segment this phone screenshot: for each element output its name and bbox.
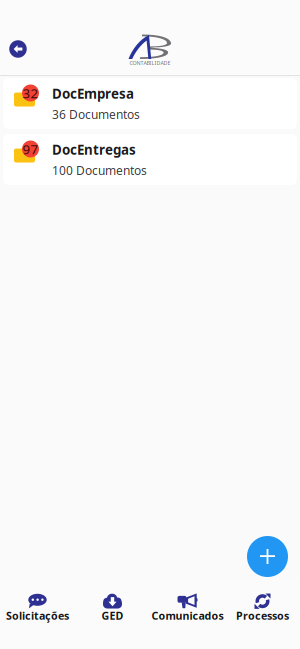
staticText: Comunicados [151,608,223,623]
staticText: GED [101,608,123,623]
staticText: 97 [22,140,38,158]
staticText: DocEmpresa [52,85,134,102]
button[interactable]: Processos [225,578,300,649]
staticText: 36 Documentos [52,106,140,122]
button[interactable]: 32 [3,78,297,129]
button[interactable]: GED [75,578,150,649]
staticText: CONTABILIDADE [129,59,170,67]
staticText: Solicitações [6,608,69,623]
button[interactable]: 97 [3,134,297,185]
button[interactable]: Add [247,536,288,577]
button[interactable]: Back [1,32,35,66]
button[interactable]: Solicitações [0,578,75,649]
staticText: 100 Documentos [52,162,147,178]
staticText: DocEntregas [52,141,136,158]
staticText: Processos [236,608,289,623]
button[interactable]: Comunicados [150,578,225,649]
staticText: 32 [22,84,38,102]
